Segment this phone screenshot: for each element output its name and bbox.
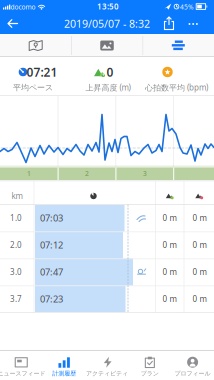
button[interactable]: History [43,351,86,380]
staticText: 0 m [162,213,176,223]
button[interactable]: Activity [86,351,128,380]
staticText: 45% [180,3,194,11]
button[interactable]: Plan [128,351,171,380]
staticText: km [11,191,22,201]
staticText: 07:12 [40,239,63,251]
button[interactable]: Back [4,15,22,31]
staticText: プラン [141,370,159,377]
button[interactable]: More [187,18,201,30]
staticText: 07:21 [26,64,57,80]
staticText: 心拍数平均 (bpm) [145,82,208,93]
button[interactable]: Share [162,16,178,31]
staticText: 2019/05/07 - 8:32 [64,16,150,31]
staticText: 13:50 [97,1,119,12]
staticText: 0 m [192,294,206,304]
staticText: 07:03 [40,212,63,224]
staticText: 平均ペース [13,83,53,92]
staticText: 0 m [162,294,176,304]
staticText: + [102,72,105,79]
staticText: 1.0 [10,213,22,223]
staticText: 0 m [192,213,206,223]
staticText: 0 m [192,267,206,277]
button[interactable]: News feed [0,351,43,380]
staticText: 0 m [192,240,206,250]
staticText: プロフィール [175,370,211,377]
staticText: 07:47 [40,266,63,278]
staticText: ニュースフィード [0,370,45,377]
staticText: 07:23 [40,293,63,305]
staticText: 1 [27,169,31,178]
staticText: 0 m [162,267,176,277]
staticText: 3 [143,169,147,178]
staticText: 3.7 [10,294,22,304]
staticText: 3.0 [10,267,22,277]
staticText: 2 [85,169,89,178]
staticText: 0 m [162,240,176,250]
staticText: 0 [106,64,113,80]
staticText: 2.0 [10,240,22,250]
staticText: 計測履歴 [52,370,76,377]
staticText: docomo [10,3,35,11]
button[interactable]: Photos [71,34,142,57]
staticText: 上昇高度 (m) [85,82,130,93]
staticText: アクティビティ [86,370,128,377]
button[interactable]: Statistics [143,34,214,57]
button[interactable]: Map [0,34,71,57]
button[interactable]: Profile [171,351,214,380]
